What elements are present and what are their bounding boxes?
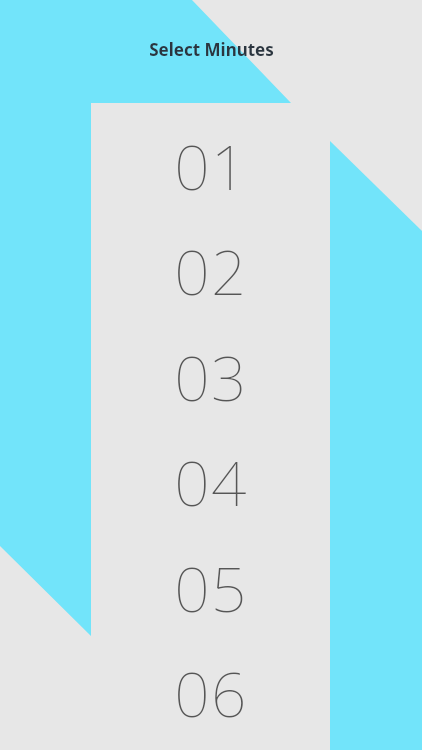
staticText: 04 [174,440,248,524]
button[interactable]: 02 [91,218,330,323]
staticText: 01 [174,124,248,208]
button[interactable]: 05 [91,535,330,640]
button[interactable]: 06 [91,640,330,745]
button[interactable]: Select Minutes [149,38,274,61]
button[interactable]: 01 [91,113,330,218]
button[interactable]: 03 [91,324,330,429]
button[interactable]: 04 [91,429,330,534]
staticText: 03 [174,335,248,419]
staticText: 06 [174,651,248,735]
staticText: 05 [174,546,248,630]
staticText: 02 [174,229,248,313]
